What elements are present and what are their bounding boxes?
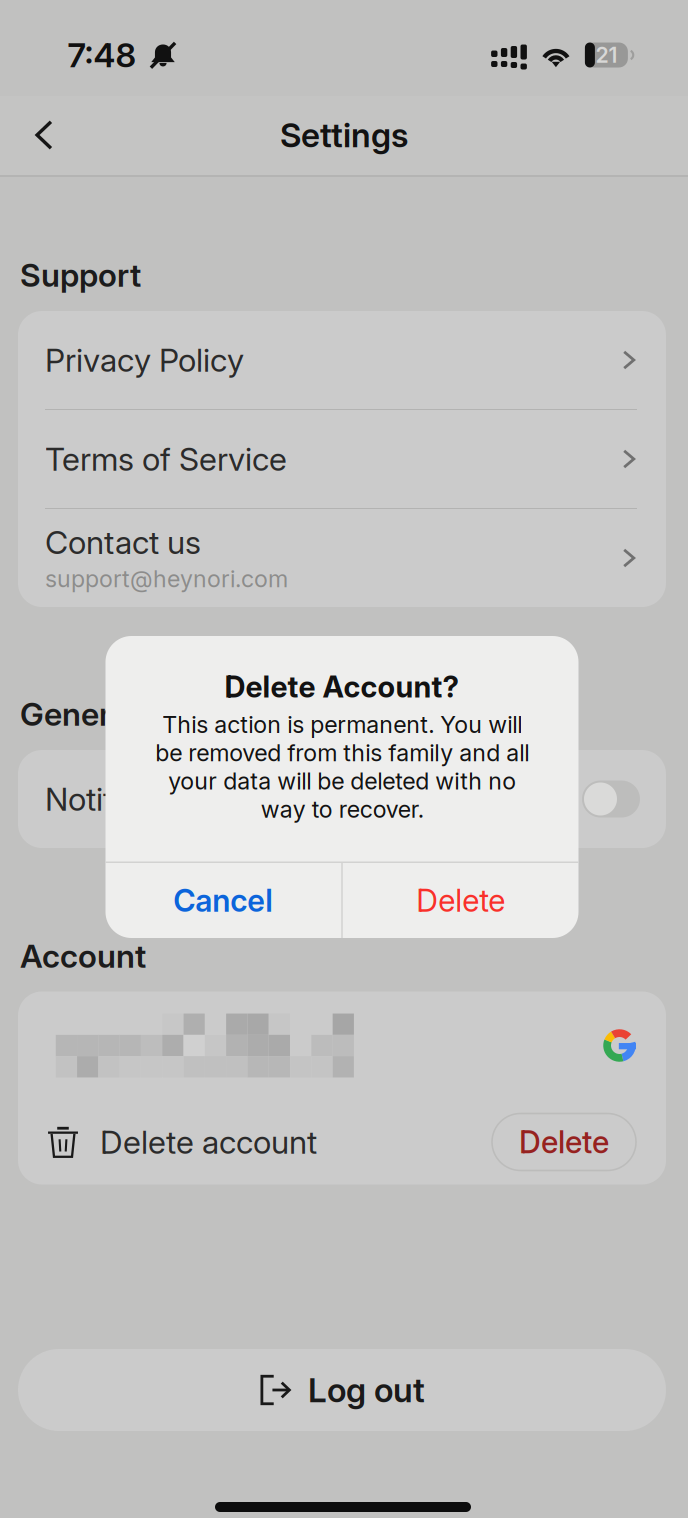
button[interactable]: Back bbox=[11, 102, 77, 168]
staticText: support@heynori.com bbox=[45, 565, 288, 593]
staticText: Privacy Policy bbox=[45, 341, 244, 379]
staticText: Log out bbox=[308, 1370, 425, 1410]
button[interactable]: Notifications bbox=[582, 780, 640, 817]
button[interactable]: Delete bbox=[492, 1113, 636, 1170]
staticText: Support bbox=[20, 256, 141, 294]
button[interactable]: Cancel bbox=[105, 863, 341, 938]
staticText: Delete account bbox=[100, 1123, 317, 1161]
staticText: 7:48 bbox=[67, 35, 136, 75]
staticText: General bbox=[20, 695, 137, 733]
staticText: Settings bbox=[280, 115, 408, 155]
staticText: Account bbox=[20, 937, 146, 975]
button[interactable]: Delete bbox=[343, 863, 579, 938]
staticText: Notifications bbox=[45, 780, 225, 818]
staticText: Terms of Service bbox=[45, 440, 287, 478]
staticText: This action is permanent. You will be re… bbox=[155, 710, 529, 823]
button[interactable]: Contact us bbox=[18, 509, 666, 607]
button[interactable]: Log out bbox=[18, 1349, 666, 1431]
staticText: Contact us bbox=[45, 523, 201, 562]
staticText: Cancel bbox=[173, 882, 273, 919]
staticText: Delete Account? bbox=[224, 669, 459, 704]
button[interactable]: Terms of Service bbox=[18, 410, 666, 508]
staticText: Delete bbox=[519, 1123, 609, 1160]
staticText: Delete bbox=[416, 882, 505, 919]
button[interactable]: Privacy Policy bbox=[18, 311, 666, 409]
staticText: 21 bbox=[595, 42, 617, 68]
